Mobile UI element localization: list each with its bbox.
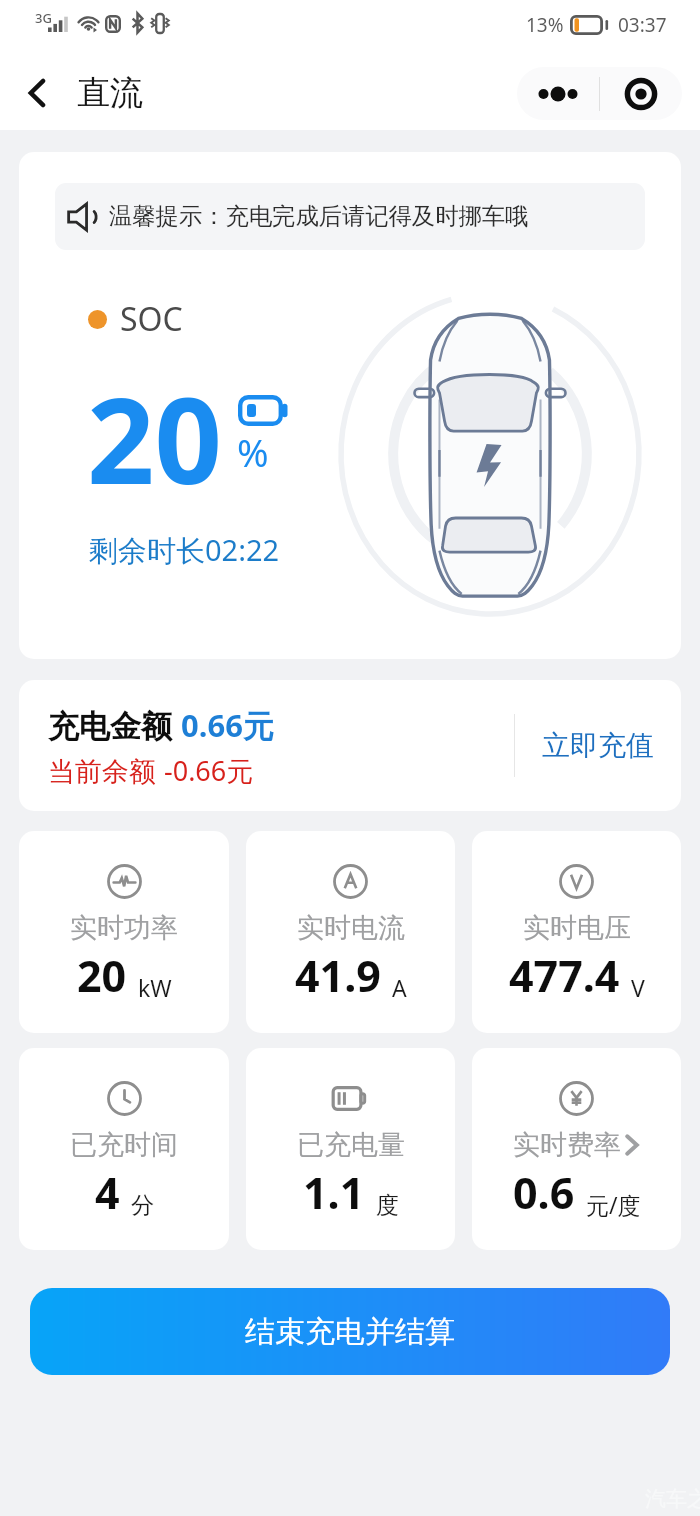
staticText: 4 — [95, 1163, 120, 1222]
button[interactable]: Close — [600, 67, 682, 120]
staticText: 0.66元 — [181, 704, 274, 746]
staticText: 剩余时长02:22 — [89, 530, 280, 570]
staticText: 元/度 — [586, 1189, 641, 1220]
button[interactable]: 实时电压 — [472, 831, 681, 1033]
staticText: 分 — [131, 1191, 154, 1220]
staticText: 温馨提示：充电完成后请记得及时挪车哦 — [109, 202, 529, 231]
staticText: SOC — [120, 297, 183, 341]
staticText: 477.4 — [509, 946, 620, 1005]
staticText: 当前余额 — [48, 755, 156, 789]
staticText: 充电金额 — [48, 707, 172, 746]
button[interactable]: 实时功率 — [19, 831, 229, 1033]
staticText: kW — [138, 972, 172, 1003]
staticText: 已充电量 — [297, 1128, 405, 1162]
staticText: A — [392, 972, 407, 1003]
staticText: % — [237, 426, 269, 478]
staticText: 直流 — [77, 72, 143, 114]
staticText: 1.1 — [303, 1163, 365, 1222]
staticText: 20 — [87, 358, 222, 519]
staticText: -0.66元 — [164, 752, 254, 789]
staticText: 立即充值 — [542, 728, 654, 763]
button[interactable]: 实时电流 — [246, 831, 455, 1033]
staticText: 已充时间 — [70, 1128, 178, 1162]
staticText: 20 — [77, 946, 127, 1005]
staticText: 3G — [35, 9, 52, 27]
button[interactable]: More options — [517, 67, 599, 120]
staticText: 实时电流 — [297, 911, 405, 945]
staticText: 41.9 — [295, 946, 381, 1005]
button[interactable]: 已充时间 — [19, 1048, 229, 1250]
button[interactable]: 结束充电并结算 — [30, 1288, 670, 1375]
staticText: 实时费率 — [513, 1128, 621, 1162]
button[interactable]: 已充电量 — [246, 1048, 455, 1250]
button[interactable]: Back — [12, 68, 62, 118]
staticText: 实时电压 — [523, 911, 631, 945]
staticText: V — [631, 972, 645, 1003]
staticText: 度 — [376, 1191, 399, 1220]
staticText: 结束充电并结算 — [245, 1313, 455, 1351]
staticText: 13% — [526, 12, 564, 38]
staticText: 0.6 — [513, 1163, 575, 1222]
button[interactable]: 立即充值 — [515, 706, 681, 785]
staticText: 实时功率 — [70, 911, 178, 945]
button[interactable]: 实时费率 — [472, 1048, 681, 1250]
staticText: 03:37 — [618, 12, 667, 38]
